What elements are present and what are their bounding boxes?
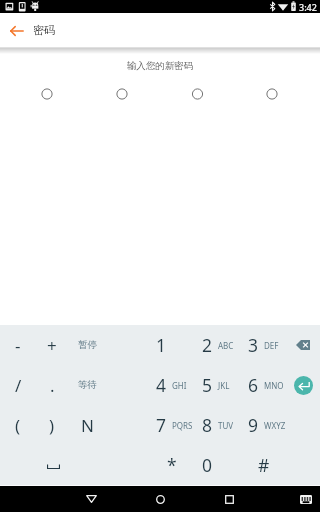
staticText: MNO xyxy=(264,380,284,391)
button[interactable]: ( xyxy=(1,405,35,445)
button[interactable] xyxy=(184,325,230,365)
staticText: 等待 xyxy=(78,379,97,391)
staticText: 密码 xyxy=(33,23,55,37)
button[interactable] xyxy=(138,325,184,365)
staticText: WXYZ xyxy=(264,420,286,431)
staticText: 0 xyxy=(202,453,213,477)
button[interactable]: ) xyxy=(35,405,69,445)
staticText: 6 xyxy=(248,373,259,397)
button[interactable]: - xyxy=(1,325,35,365)
staticText: ) xyxy=(49,414,55,437)
staticText: . xyxy=(50,374,55,397)
staticText: 输入您的新密码 xyxy=(0,60,320,72)
button[interactable]: Space xyxy=(31,445,75,485)
staticText: GHI xyxy=(172,380,187,391)
staticText: 5 xyxy=(202,373,213,397)
button[interactable]: Back xyxy=(68,486,114,512)
staticText: 1 xyxy=(156,333,167,357)
staticText: 暂停 xyxy=(78,339,97,351)
staticText: + xyxy=(47,334,57,357)
button[interactable] xyxy=(184,365,230,405)
button[interactable]: Recents xyxy=(206,486,252,512)
button[interactable] xyxy=(184,445,230,485)
button[interactable]: Delete xyxy=(285,325,320,365)
staticText: N xyxy=(81,414,94,437)
button[interactable]: Switch keyboard xyxy=(294,486,318,512)
button[interactable] xyxy=(138,405,184,445)
staticText: 4 xyxy=(156,373,167,397)
staticText: 7 xyxy=(156,413,167,437)
staticText: TUV xyxy=(218,420,234,431)
staticText: JKL xyxy=(218,380,230,391)
staticText: # xyxy=(258,453,270,477)
staticText: PQRS xyxy=(172,420,193,431)
button[interactable] xyxy=(241,445,287,485)
staticText: 2 xyxy=(202,333,213,357)
button[interactable]: + xyxy=(35,325,69,365)
staticText: ( xyxy=(15,414,21,437)
button[interactable]: 暂停 xyxy=(70,325,104,365)
button[interactable] xyxy=(230,405,276,445)
button[interactable] xyxy=(149,445,195,485)
button[interactable]: Enter xyxy=(294,376,313,395)
button[interactable]: 等待 xyxy=(70,365,104,405)
staticText: 8 xyxy=(202,413,213,437)
button[interactable] xyxy=(230,365,276,405)
button[interactable]: / xyxy=(1,365,35,405)
button[interactable]: Home xyxy=(137,486,183,512)
staticText: 3:42 xyxy=(299,1,317,13)
staticText: * xyxy=(167,453,177,477)
staticText: - xyxy=(15,334,21,357)
button[interactable] xyxy=(230,325,276,365)
staticText: ABC xyxy=(218,340,234,351)
staticText: DEF xyxy=(264,340,279,351)
button[interactable] xyxy=(184,405,230,445)
button[interactable]: . xyxy=(35,365,69,405)
staticText: 3 xyxy=(248,333,259,357)
button[interactable]: Back xyxy=(0,13,30,47)
button[interactable]: N xyxy=(70,405,104,445)
staticText: / xyxy=(15,374,22,397)
staticText: 9 xyxy=(248,413,259,437)
button[interactable] xyxy=(138,365,184,405)
